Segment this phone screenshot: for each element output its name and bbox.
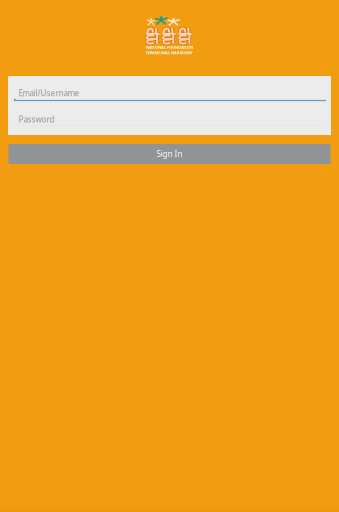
- staticText: Email/Username: [18, 88, 79, 98]
- staticText: Password: [18, 114, 54, 125]
- staticText: NATIONAL FOUNDATION: [146, 44, 193, 50]
- staticText: COMMUNAL HARMONY: [146, 50, 193, 55]
- button[interactable]: Sign In: [8, 144, 330, 164]
- staticText: Sign In: [156, 149, 182, 159]
